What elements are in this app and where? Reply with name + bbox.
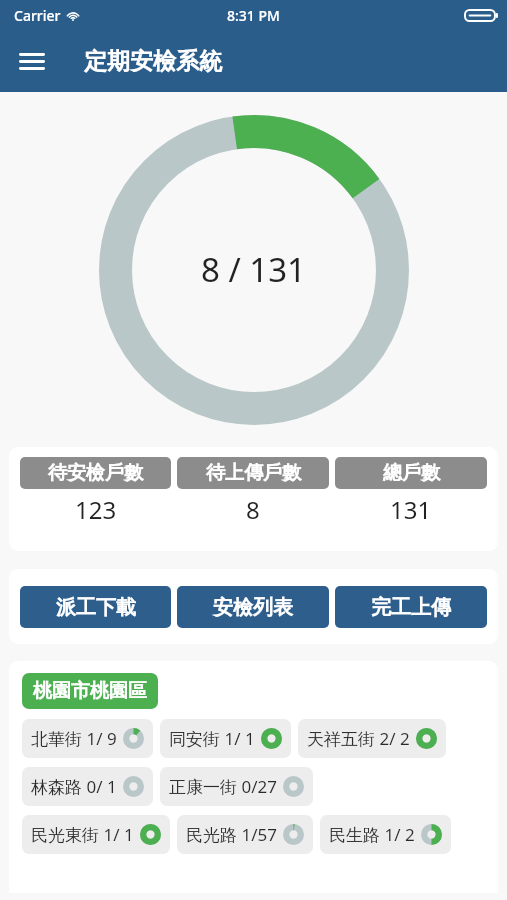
staticText: 同安街 1/ 1 xyxy=(169,727,255,750)
button[interactable]: 待上傳戶數 xyxy=(177,457,329,526)
button[interactable]: 林森路 0/ 1 xyxy=(22,767,153,806)
staticText: 完工上傳 xyxy=(371,595,451,620)
button[interactable]: 民光路 1/57 xyxy=(177,815,313,854)
staticText: 待安檢戶數 xyxy=(48,461,143,485)
staticText: 北華街 1/ 9 xyxy=(31,727,117,750)
staticText: 待上傳戶數 xyxy=(206,461,301,485)
button[interactable]: 同安街 1/ 1 xyxy=(160,719,291,758)
staticText: 民光東街 1/ 1 xyxy=(31,823,134,846)
button[interactable]: Open navigation menu xyxy=(10,39,54,83)
button[interactable]: 民光東街 1/ 1 xyxy=(22,815,170,854)
staticText: 民光路 1/57 xyxy=(186,823,277,846)
staticText: 8 / 131 xyxy=(201,247,306,292)
button[interactable]: 正康一街 0/27 xyxy=(160,767,313,806)
staticText: 林森路 0/ 1 xyxy=(31,775,117,798)
button[interactable]: 天祥五街 2/ 2 xyxy=(298,719,446,758)
button[interactable]: 安檢列表 xyxy=(177,586,329,628)
staticText: 天祥五街 2/ 2 xyxy=(307,727,410,750)
button[interactable]: 總戶數 xyxy=(335,457,487,526)
button[interactable]: 待安檢戶數 xyxy=(20,457,171,526)
staticText: 安檢列表 xyxy=(213,595,293,620)
staticText: 131 xyxy=(390,493,432,526)
staticText: 總戶數 xyxy=(383,461,440,485)
button[interactable]: 派工下載 xyxy=(20,586,171,628)
staticText: 派工下載 xyxy=(56,595,136,620)
button[interactable]: 北華街 1/ 9 xyxy=(22,719,153,758)
staticText: 8:31 PM xyxy=(227,6,280,25)
button[interactable]: 桃園市桃園區 xyxy=(22,673,158,709)
button[interactable]: 完工上傳 xyxy=(335,586,487,628)
staticText: Carrier xyxy=(14,6,61,25)
staticText: 桃園市桃園區 xyxy=(33,679,147,703)
staticText: 定期安檢系統 xyxy=(84,47,222,76)
staticText: 民生路 1/ 2 xyxy=(329,823,415,846)
staticText: 8 xyxy=(246,493,260,526)
staticText: 123 xyxy=(75,493,117,526)
staticText: 正康一街 0/27 xyxy=(169,775,277,798)
button[interactable]: 民生路 1/ 2 xyxy=(320,815,451,854)
